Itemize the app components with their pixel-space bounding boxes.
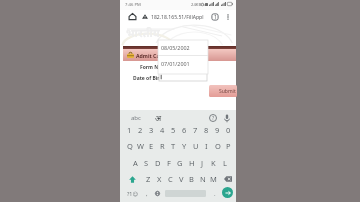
button[interactable]: O — [212, 139, 223, 153]
button[interactable]: L — [219, 156, 230, 170]
button[interactable]: Z — [143, 172, 154, 186]
staticText: E — [149, 141, 154, 151]
staticText: Q — [127, 141, 133, 151]
button[interactable]: F — [163, 156, 174, 170]
button[interactable]: A — [130, 156, 141, 170]
button[interactable]: W — [135, 139, 146, 153]
staticText: 7 — [193, 125, 198, 135]
staticText: A — [133, 158, 138, 168]
staticText: X — [157, 174, 162, 184]
button[interactable]: 07/01/2001 — [158, 56, 208, 71]
button[interactable]: 08/05/2002 — [158, 40, 208, 55]
staticText: H — [189, 158, 195, 168]
button[interactable]: N — [197, 172, 208, 186]
button[interactable]: Voice input — [222, 113, 232, 123]
button[interactable]: Change language — [152, 187, 162, 200]
button[interactable]: M — [208, 172, 219, 186]
staticText: G — [177, 158, 183, 168]
button[interactable]: Symbols — [126, 187, 139, 200]
staticText: D — [155, 158, 161, 168]
staticText: B — [189, 174, 194, 184]
button[interactable]: H — [186, 156, 197, 170]
button[interactable]: . — [210, 187, 220, 200]
staticText: R — [160, 141, 165, 151]
staticText: , — [146, 190, 148, 198]
button[interactable]: B — [186, 172, 197, 186]
staticText: T — [171, 141, 176, 151]
button[interactable]: S — [141, 156, 152, 170]
button[interactable]: D — [152, 156, 163, 170]
button[interactable]: abc — [127, 112, 145, 123]
button[interactable]: Submit — [209, 85, 237, 97]
button[interactable]: V — [176, 172, 187, 186]
button[interactable]: K — [208, 156, 219, 170]
button[interactable]: P — [223, 139, 234, 153]
staticText: S — [144, 158, 149, 168]
staticText: K — [211, 158, 216, 168]
button[interactable]: 6 — [179, 123, 190, 137]
button[interactable]: C — [165, 172, 176, 186]
button[interactable]: X — [154, 172, 165, 186]
staticText: abc — [131, 114, 141, 122]
button[interactable]: अ — [150, 111, 166, 124]
staticText: 1 — [214, 14, 217, 21]
staticText: Y — [182, 141, 187, 151]
staticText: I — [205, 141, 208, 151]
button[interactable]: R — [157, 139, 168, 153]
staticText: 9 — [215, 125, 220, 135]
staticText: M — [210, 174, 217, 184]
staticText: 3 — [149, 125, 154, 135]
staticText: अ — [155, 112, 162, 123]
button[interactable]: Backspace — [221, 172, 234, 186]
staticText: 182.18.165.51/FillAppl — [151, 14, 204, 21]
button[interactable]: More options — [224, 13, 232, 21]
staticText: U — [193, 141, 199, 151]
button[interactable]: , — [142, 187, 152, 200]
staticText: L — [223, 158, 227, 168]
button[interactable]: Enter — [222, 187, 233, 198]
staticText: Submit — [219, 88, 236, 95]
button[interactable]: 1 — [124, 123, 135, 137]
button[interactable]: Shift — [126, 172, 139, 186]
staticText: 4 — [160, 125, 165, 135]
button[interactable]: 8 — [201, 123, 212, 137]
staticText: 5 — [171, 125, 176, 135]
button[interactable]: Tabs — [211, 13, 219, 21]
staticText: O — [215, 141, 221, 151]
staticText: 2 — [138, 125, 143, 135]
button[interactable]: 3 — [146, 123, 157, 137]
staticText: ? — [212, 115, 215, 122]
staticText: 8 — [204, 125, 209, 135]
button[interactable]: Home — [128, 12, 137, 21]
button[interactable]: J — [197, 156, 208, 170]
button[interactable]: Help — [208, 113, 218, 123]
button[interactable]: I — [201, 139, 212, 153]
button[interactable]: 7 — [190, 123, 201, 137]
button[interactable]: Q — [124, 139, 135, 153]
button[interactable]: E — [146, 139, 157, 153]
button[interactable]: 2 — [135, 123, 146, 137]
button[interactable]: 0 — [223, 123, 234, 137]
staticText: 7:46 PM — [125, 2, 141, 8]
button[interactable]: 4 — [157, 123, 168, 137]
staticText: Z — [146, 174, 151, 184]
staticText: C — [168, 174, 173, 184]
staticText: भारतीय — [126, 25, 160, 40]
staticText: Form No.: — [140, 64, 165, 71]
button[interactable]: 9 — [212, 123, 223, 137]
button[interactable]: Y — [179, 139, 190, 153]
staticText: 08/05/2002 — [161, 44, 190, 51]
staticText: Date of Birth: — [133, 75, 167, 82]
staticText: P — [226, 141, 231, 151]
staticText: V — [179, 174, 184, 184]
button[interactable]: U — [190, 139, 201, 153]
staticText: N — [200, 174, 206, 184]
staticText: ?1☺ — [127, 190, 139, 197]
staticText: 1 — [127, 125, 132, 135]
staticText: . — [214, 190, 216, 198]
staticText: Admit Card — [136, 52, 166, 59]
button[interactable]: T — [168, 139, 179, 153]
button[interactable]: 5 — [168, 123, 179, 137]
button[interactable]: G — [174, 156, 185, 170]
